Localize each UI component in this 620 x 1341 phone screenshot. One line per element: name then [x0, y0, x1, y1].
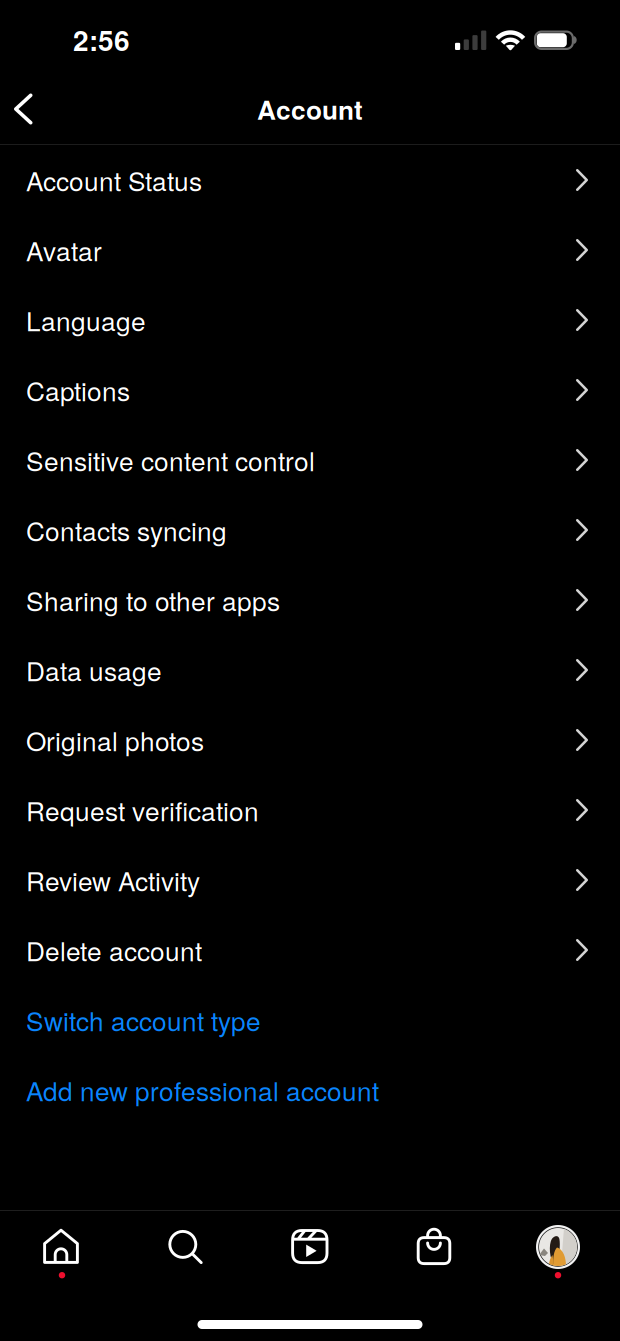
button[interactable]: Back: [0, 78, 60, 140]
staticText: Add new professional account: [26, 1071, 379, 1109]
button[interactable]: Search: [124, 1211, 248, 1285]
staticText: Data usage: [26, 651, 162, 689]
button[interactable]: Account Status: [0, 145, 620, 215]
staticText: 2:56: [73, 19, 130, 60]
staticText: Review Activity: [26, 861, 200, 899]
button[interactable]: Sharing to other apps: [0, 565, 620, 635]
button[interactable]: Home: [0, 1211, 124, 1285]
staticText: Delete account: [26, 931, 202, 969]
staticText: Language: [26, 301, 146, 339]
button[interactable]: Profile: [496, 1211, 620, 1285]
button[interactable]: Contacts syncing: [0, 495, 620, 565]
staticText: Avatar: [26, 231, 102, 269]
staticText: Sharing to other apps: [26, 581, 280, 619]
button[interactable]: Request verification: [0, 775, 620, 845]
button[interactable]: Captions: [0, 355, 620, 425]
staticText: Contacts syncing: [26, 511, 227, 549]
staticText: Request verification: [26, 791, 259, 829]
button[interactable]: Sensitive content control: [0, 425, 620, 495]
button[interactable]: Shop: [372, 1211, 496, 1285]
button[interactable]: Switch account type: [0, 985, 620, 1055]
button[interactable]: Original photos: [0, 705, 620, 775]
button[interactable]: Review Activity: [0, 845, 620, 915]
button[interactable]: Data usage: [0, 635, 620, 705]
staticText: Original photos: [26, 721, 204, 759]
staticText: Sensitive content control: [26, 441, 315, 479]
button[interactable]: Add new professional account: [0, 1055, 620, 1125]
button[interactable]: Reels: [248, 1211, 372, 1285]
staticText: Account: [257, 90, 363, 128]
button[interactable]: Delete account: [0, 915, 620, 985]
staticText: Switch account type: [26, 1001, 261, 1039]
button[interactable]: Language: [0, 285, 620, 355]
staticText: Account Status: [26, 161, 202, 199]
button[interactable]: Avatar: [0, 215, 620, 285]
staticText: Captions: [26, 371, 130, 409]
